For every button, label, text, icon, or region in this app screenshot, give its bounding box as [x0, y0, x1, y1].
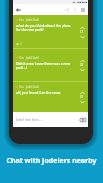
button[interactable]: Upvote — [77, 90, 87, 95]
button[interactable]: Downvote — [77, 34, 87, 39]
staticText: 4 — [20, 42, 22, 46]
button[interactable]: Downvote — [77, 67, 87, 72]
staticText: Didn't even know there was a new park :-… — [16, 61, 74, 70]
button[interactable]: Back — [13, 5, 23, 15]
button[interactable]: 5 m — [13, 49, 88, 81]
staticText: Jodel text here... — [16, 117, 42, 122]
staticText: 5 m — [19, 56, 24, 60]
staticText: 12 — [80, 30, 84, 34]
staticText: 5 m — [19, 18, 24, 22]
staticText: 10 — [80, 95, 84, 99]
staticText: 5 m — [19, 85, 24, 89]
staticText: Jodel Stadt — [26, 85, 40, 89]
button[interactable]: Upvote — [77, 58, 87, 63]
button[interactable]: Upvote — [77, 25, 87, 30]
button[interactable]: Share — [63, 6, 71, 14]
button[interactable]: 5 m — [13, 82, 88, 112]
staticText: Jodel Stadt — [26, 18, 40, 22]
button[interactable]: 5 m — [13, 15, 88, 48]
button[interactable]: Camera — [77, 114, 88, 125]
staticText: aH, just found it in the news — [16, 90, 61, 95]
button[interactable]: Downvote — [77, 99, 87, 104]
button[interactable]: Notifications — [79, 6, 87, 14]
staticText: 23 — [80, 63, 84, 67]
staticText: what do you think about the plans for th… — [16, 23, 74, 32]
button[interactable]: More options — [71, 6, 79, 14]
staticText: Jodel Stadt — [26, 56, 40, 60]
staticText: Chat with Jodelers nearby — [0, 156, 103, 166]
